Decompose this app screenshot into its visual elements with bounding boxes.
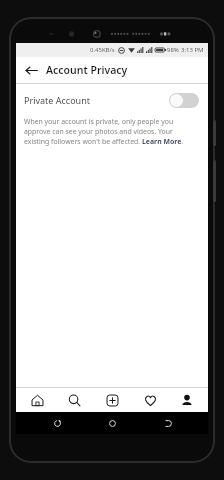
staticText: Account Privacy (46, 63, 128, 77)
button[interactable]: Add post (95, 388, 129, 412)
staticText: 0.45KB/s (90, 46, 115, 54)
button[interactable]: Recents (42, 412, 72, 434)
button[interactable]: Private account toggle, off (169, 93, 199, 108)
button[interactable]: Private Account (16, 84, 208, 116)
button[interactable]: Back (153, 412, 183, 434)
staticText: Private Account (24, 94, 90, 106)
button[interactable]: Back (21, 60, 41, 80)
button[interactable]: Home (20, 388, 54, 412)
staticText: 98% (167, 46, 179, 54)
staticText: When your account is private, only peopl… (24, 117, 198, 146)
button[interactable]: Activity (133, 388, 167, 412)
staticText: 3:13 PM (181, 46, 204, 54)
button[interactable]: Search (57, 388, 91, 412)
button[interactable]: Home (97, 412, 127, 434)
button[interactable]: Profile (170, 388, 204, 412)
